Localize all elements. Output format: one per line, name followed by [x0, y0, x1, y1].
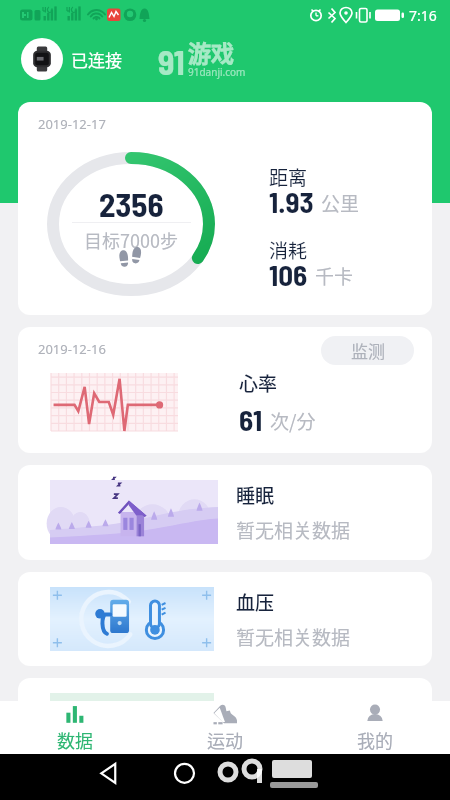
- staticText: 暂无相关数据: [236, 623, 351, 651]
- button[interactable]: 监测: [321, 336, 414, 365]
- staticText: 我的: [357, 727, 393, 753]
- staticText: 次/分: [270, 407, 316, 435]
- staticText: 运动: [207, 727, 243, 753]
- staticText: 2019-12-17: [38, 115, 106, 133]
- staticText: 2019-12-16: [38, 340, 106, 358]
- staticText: 距离: [269, 163, 308, 191]
- button[interactable]: [18, 678, 432, 718]
- staticText: 61: [239, 402, 263, 437]
- staticText: 暂无相关数据: [236, 516, 351, 544]
- staticText: 目标7000步: [84, 227, 178, 253]
- button[interactable]: 数据: [0, 701, 150, 754]
- staticText: 106: [269, 257, 308, 292]
- button[interactable]: 血压: [18, 572, 432, 666]
- staticText: 游戏: [188, 35, 234, 68]
- staticText: 数据: [57, 727, 93, 753]
- staticText: 91danji.com: [188, 65, 246, 79]
- button[interactable]: 运动: [150, 701, 300, 754]
- staticText: 7:16: [409, 6, 437, 25]
- staticText: 2356: [99, 184, 164, 224]
- staticText: 监测: [351, 338, 385, 363]
- staticText: 已连接: [71, 47, 122, 72]
- staticText: 千卡: [315, 262, 354, 290]
- staticText: 消耗: [269, 236, 308, 264]
- button[interactable]: 睡眠: [18, 465, 432, 560]
- button[interactable]: Watch connected: [21, 38, 63, 80]
- staticText: 1.93: [269, 184, 314, 219]
- staticText: 公里: [321, 189, 360, 217]
- staticText: 91: [158, 41, 185, 82]
- staticText: 睡眠: [236, 481, 275, 509]
- button[interactable]: 2019-12-17: [18, 102, 432, 315]
- button[interactable]: 2019-12-16: [18, 327, 432, 453]
- staticText: 心率: [239, 369, 278, 397]
- button[interactable]: 我的: [300, 701, 450, 754]
- staticText: 血压: [236, 588, 275, 616]
